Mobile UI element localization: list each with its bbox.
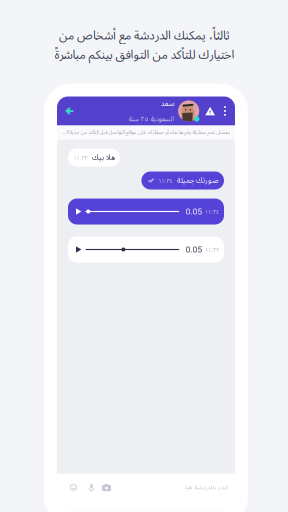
button[interactable]: More options xyxy=(220,98,235,124)
staticText: صورتك جميلة xyxy=(176,173,218,188)
staticText: يفضل عدم مشاركة رقم هاتفك أو حساباتك على… xyxy=(62,127,230,138)
button[interactable]: Emoji xyxy=(67,481,80,494)
staticText: ١١:٣٣ xyxy=(73,154,87,161)
staticText: ١١:٣٤ xyxy=(205,208,219,215)
staticText: السعودية ٢٥ سنة xyxy=(128,112,174,126)
staticText: اختيارك للتأكد من التوافق بينكم مباشرةً xyxy=(54,42,234,68)
staticText: ١١:٣٧ xyxy=(205,246,219,253)
button[interactable]: Back xyxy=(57,98,82,124)
staticText: هلا بيك xyxy=(91,150,114,165)
staticText: سعد xyxy=(160,96,174,112)
staticText: ثالثاً، يمكنك الدردشة مع أشخاص من xyxy=(58,23,229,48)
button[interactable]: Report user xyxy=(199,98,220,124)
staticText: ١١:٣٤ xyxy=(158,177,172,184)
staticText: ابدء بالدردشة هنا xyxy=(184,481,227,494)
staticText: 0.05 xyxy=(185,245,202,254)
staticText: 0.05 xyxy=(185,207,202,216)
button[interactable]: Camera xyxy=(99,480,114,494)
button[interactable]: Voice message xyxy=(85,480,98,494)
